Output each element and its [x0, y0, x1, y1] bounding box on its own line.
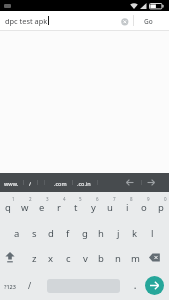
button[interactable]: u	[96, 199, 124, 215]
staticText: m	[131, 252, 140, 265]
staticText: h	[98, 227, 104, 240]
staticText: 4	[63, 196, 66, 202]
button[interactable]	[149, 253, 161, 262]
staticText: 9	[147, 196, 150, 202]
staticText: a	[14, 227, 20, 240]
button[interactable]	[145, 276, 164, 295]
staticText: 0	[164, 196, 167, 202]
staticText: y	[91, 201, 96, 214]
button[interactable]: j	[104, 225, 132, 241]
button[interactable]: .co.in	[70, 175, 98, 191]
staticText: o	[141, 201, 147, 214]
button[interactable]	[126, 179, 134, 186]
button[interactable]: v	[71, 250, 99, 266]
staticText: 1	[12, 196, 15, 202]
button[interactable]: Go	[134, 13, 162, 29]
staticText: 6	[96, 196, 99, 202]
staticText: t	[74, 201, 78, 214]
button[interactable]: w	[11, 199, 39, 215]
staticText: u	[107, 201, 113, 214]
button[interactable]: h	[87, 225, 115, 241]
button[interactable]: /	[16, 278, 44, 294]
staticText: 2	[29, 196, 32, 202]
staticText: f	[66, 227, 70, 240]
button[interactable]: i	[113, 199, 141, 215]
button[interactable]: dpc test apk	[0, 11, 169, 30]
staticText: Go	[144, 17, 153, 26]
staticText: /	[28, 280, 32, 292]
button[interactable]: r	[45, 199, 73, 215]
staticText: r	[57, 201, 61, 214]
staticText: 7	[113, 196, 116, 202]
button[interactable]: b	[87, 250, 115, 266]
button[interactable]: n	[104, 250, 132, 266]
staticText: l	[151, 227, 154, 240]
staticText: .co.in	[77, 180, 91, 187]
staticText: n	[115, 252, 121, 265]
button[interactable]: k	[121, 225, 149, 241]
staticText: /	[29, 180, 32, 187]
staticText: ?123	[4, 283, 16, 290]
button[interactable]: .com	[46, 175, 74, 191]
button[interactable]	[5, 252, 15, 263]
staticText: c	[66, 252, 71, 265]
staticText: x	[48, 252, 54, 265]
button[interactable]: .	[121, 277, 149, 293]
button[interactable]: s	[20, 225, 48, 241]
button[interactable]: y	[79, 199, 107, 215]
staticText: p	[158, 201, 164, 214]
staticText: q	[5, 201, 11, 214]
button[interactable]: www.	[0, 175, 25, 191]
button[interactable]: q	[0, 199, 22, 215]
button[interactable]: d	[37, 225, 65, 241]
staticText: e	[39, 201, 45, 214]
button[interactable]: ?123	[0, 278, 24, 294]
staticText: s	[32, 227, 37, 240]
staticText: g	[82, 227, 88, 240]
staticText: d	[48, 227, 54, 240]
button[interactable]: a	[3, 225, 31, 241]
button[interactable]: /	[16, 175, 44, 191]
button[interactable]	[121, 18, 129, 26]
staticText: .com	[54, 180, 67, 187]
staticText: 3	[46, 196, 49, 202]
staticText: k	[132, 227, 138, 240]
button[interactable]: x	[37, 250, 65, 266]
staticText: www.	[4, 180, 19, 187]
button[interactable]: o	[130, 199, 158, 215]
button[interactable]: l	[138, 225, 166, 241]
staticText: v	[83, 252, 88, 265]
button[interactable]: t	[62, 199, 90, 215]
staticText: w	[21, 201, 29, 214]
button[interactable]: f	[54, 225, 82, 241]
button[interactable]: z	[20, 250, 48, 266]
button[interactable]: e	[28, 199, 56, 215]
staticText: i	[126, 201, 129, 214]
button[interactable]: p	[147, 199, 169, 215]
staticText: dpc test apk	[5, 16, 48, 26]
button[interactable]: g	[71, 225, 99, 241]
staticText: j	[117, 227, 120, 240]
button[interactable]	[147, 179, 155, 186]
staticText: 8	[130, 196, 133, 202]
staticText: 5	[79, 196, 82, 202]
staticText: b	[98, 252, 104, 265]
button[interactable]: c	[54, 250, 82, 266]
staticText: .	[134, 280, 137, 291]
button[interactable]: m	[121, 250, 149, 266]
staticText: z	[32, 252, 37, 265]
